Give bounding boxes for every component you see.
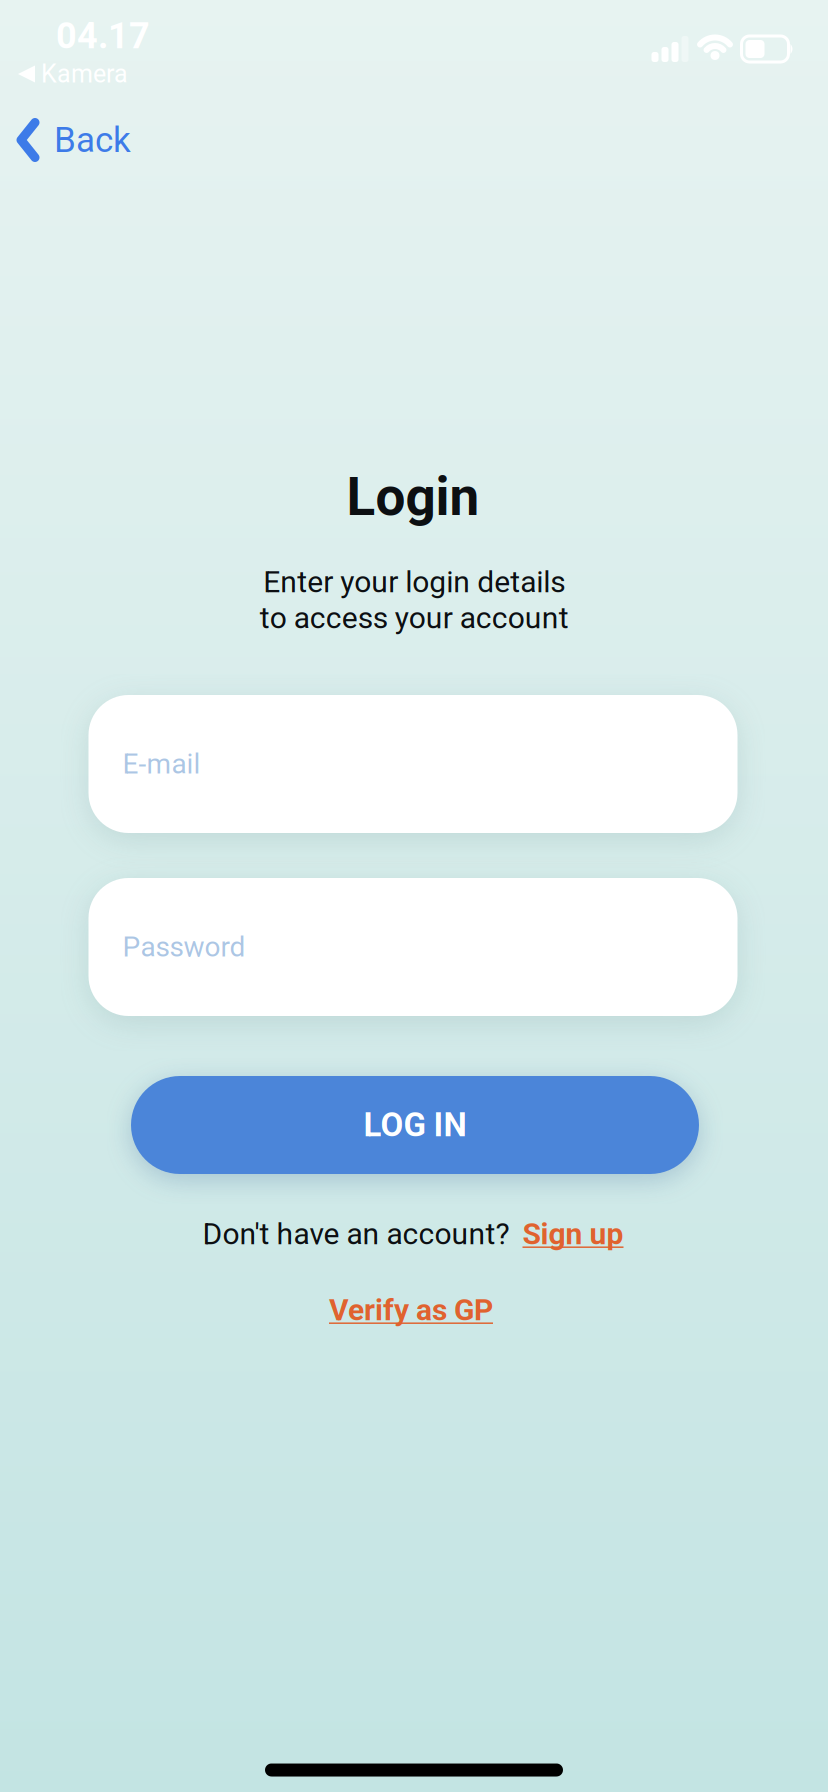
staticText: 04.17 — [56, 15, 150, 57]
staticText: Password — [122, 931, 245, 963]
staticText: Sign up — [522, 1216, 623, 1252]
staticText: LOG IN — [363, 1106, 466, 1144]
button[interactable]: Back to Kamera — [18, 59, 128, 89]
button[interactable]: Verify as GP — [329, 1292, 493, 1328]
button[interactable]: E-mail — [88, 695, 737, 833]
staticText: Back — [54, 119, 131, 160]
button[interactable]: Sign up — [522, 1216, 623, 1252]
staticText: Don't have an account? — [202, 1216, 509, 1252]
staticText: Enter your login details to access your … — [259, 564, 568, 636]
staticText: Login — [346, 466, 479, 528]
staticText: E-mail — [122, 748, 200, 780]
button[interactable]: Back — [21, 119, 131, 160]
button[interactable]: Password — [88, 878, 737, 1016]
staticText: Verify as GP — [329, 1292, 493, 1328]
button[interactable]: LOG IN — [131, 1076, 699, 1174]
staticText: Kamera — [41, 59, 128, 89]
